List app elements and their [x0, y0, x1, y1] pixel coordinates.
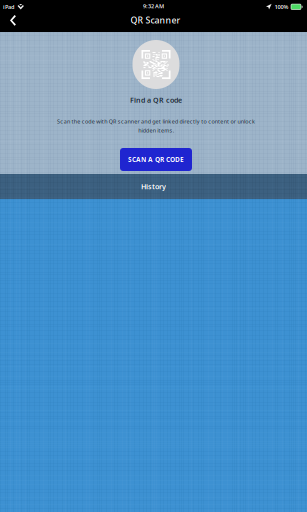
button[interactable]: SCAN A QR CODE — [120, 148, 192, 171]
staticText: SCAN A QR CODE — [128, 155, 184, 164]
staticText: hidden items. — [138, 127, 174, 134]
staticText: History — [141, 182, 166, 191]
staticText: 100% — [274, 3, 288, 11]
staticText: QR Scanner — [130, 14, 180, 26]
staticText: iPad — [3, 3, 15, 11]
staticText: Scan the code with QR scanner and get li… — [57, 118, 255, 125]
button[interactable]: Back — [0, 11, 26, 30]
staticText: Find a QR code — [130, 95, 182, 105]
staticText: 9:32 AM — [143, 2, 164, 10]
